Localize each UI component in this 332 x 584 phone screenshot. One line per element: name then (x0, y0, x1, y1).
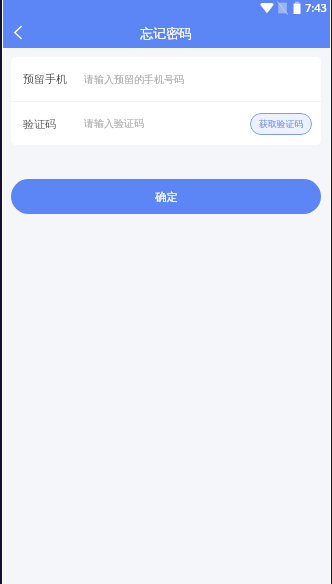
staticText: 获取验证码 (259, 119, 303, 130)
staticText: 忘记密码 (140, 25, 192, 41)
button[interactable]: 请输入验证码 (84, 117, 250, 130)
staticText: 验证码 (23, 117, 56, 131)
staticText: 请输入预留的手机号码 (84, 73, 184, 86)
staticText: 7:43 (305, 0, 327, 15)
button[interactable]: 预留手机 (11, 57, 321, 101)
staticText: 预留手机 (23, 72, 67, 86)
staticText: 确定 (155, 190, 178, 204)
button[interactable]: Back (3, 17, 33, 47)
button[interactable]: 获取验证码 (250, 113, 312, 135)
button[interactable]: 确定 (11, 179, 321, 214)
staticText: 请输入验证码 (84, 117, 144, 130)
